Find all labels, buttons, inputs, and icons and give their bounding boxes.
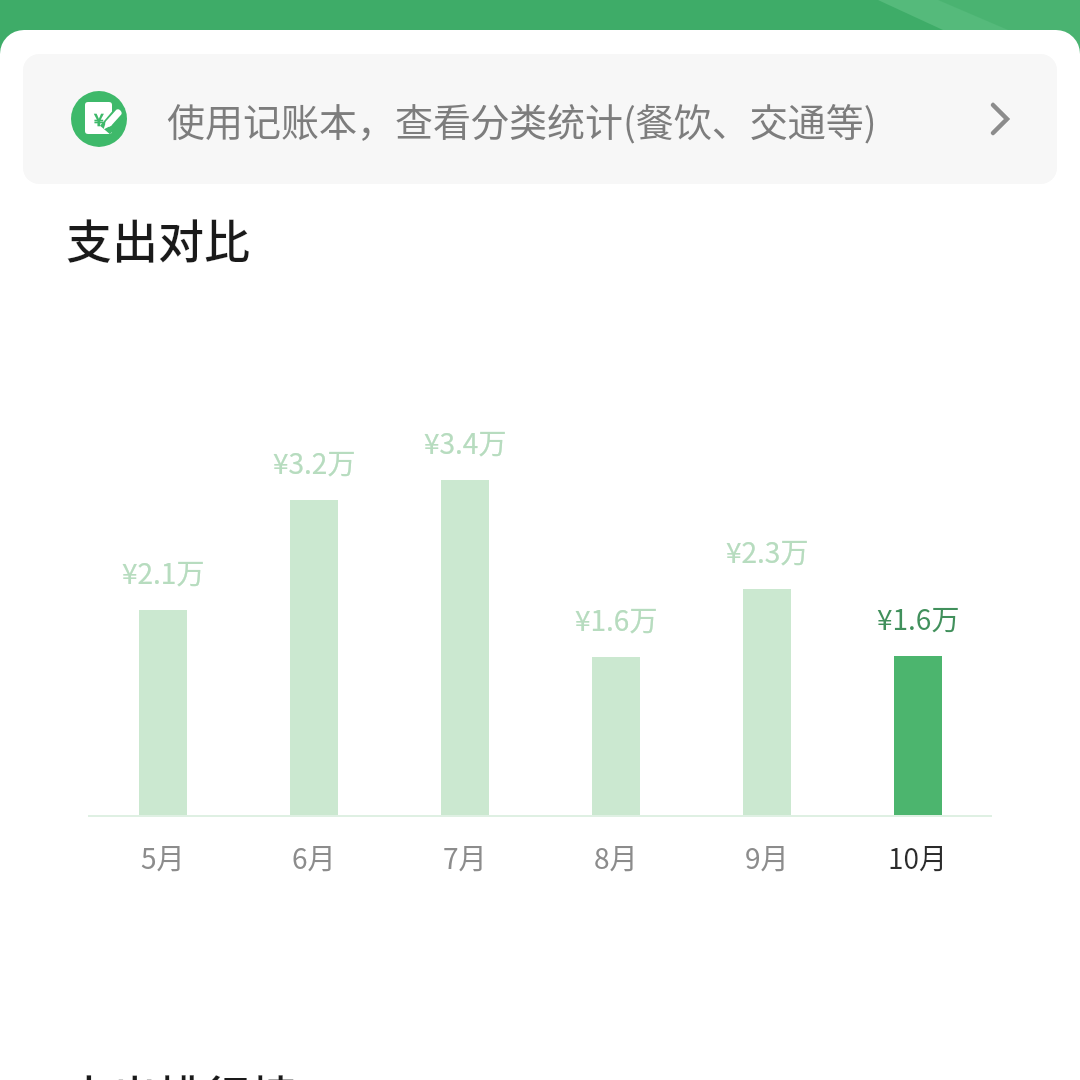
staticText: 5月: [141, 837, 185, 878]
staticText: ¥1.6万: [877, 598, 960, 639]
staticText: ¥: [94, 106, 104, 131]
staticText: 支出对比: [66, 205, 250, 272]
staticText: ¥2.1万: [122, 552, 205, 593]
button[interactable]: ¥: [23, 54, 1057, 184]
staticText: 支出排行榜: [66, 1061, 296, 1080]
staticText: 6月: [292, 837, 336, 878]
staticText: ¥2.3万: [726, 531, 809, 572]
staticText: ¥3.2万: [273, 442, 356, 483]
staticText: 7月: [443, 837, 487, 878]
staticText: 使用记账本，查看分类统计(餐饮、交通等): [167, 92, 877, 147]
staticText: ¥3.4万: [424, 422, 507, 463]
staticText: 9月: [745, 837, 789, 878]
staticText: ¥1.6万: [575, 599, 658, 640]
staticText: 10月: [888, 837, 948, 878]
staticText: 8月: [594, 837, 638, 878]
